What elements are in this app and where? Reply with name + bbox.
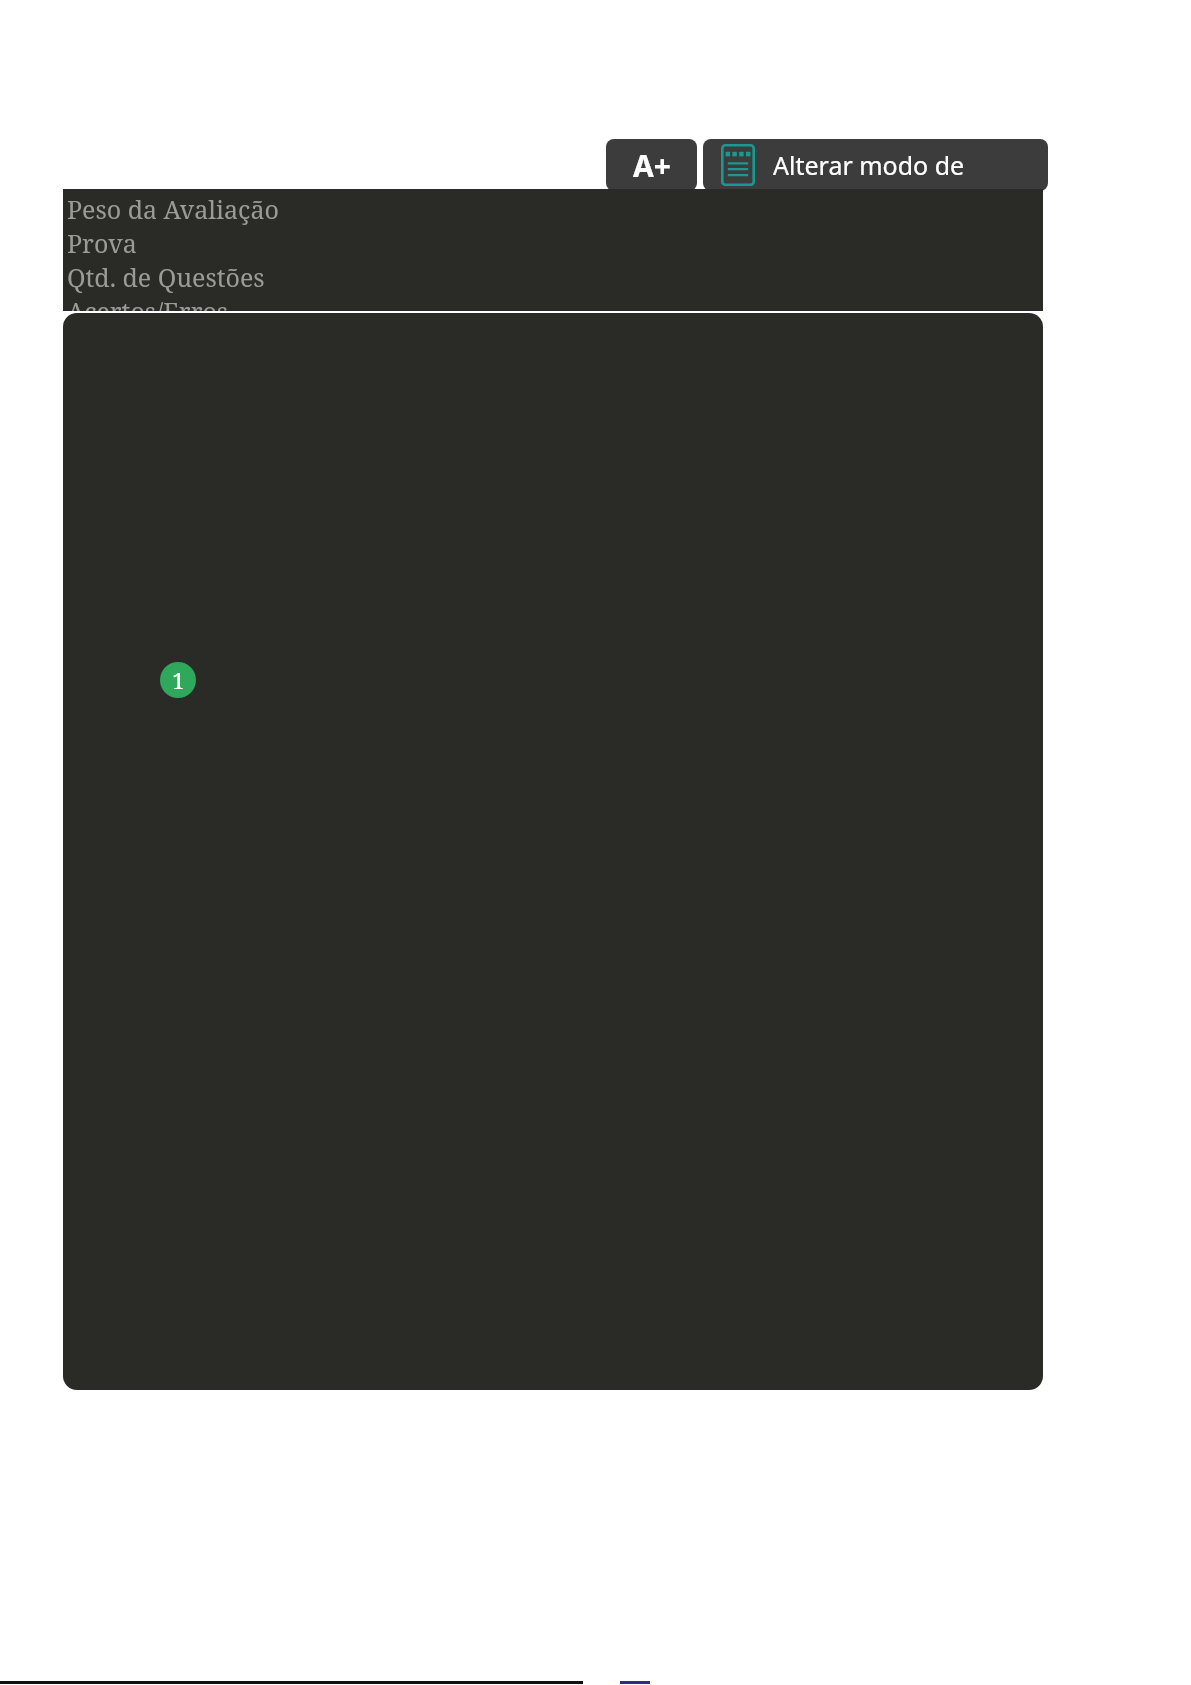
staticText: Prova [67, 226, 137, 260]
staticText: Acertos/Erros [67, 294, 229, 311]
staticText: 1 [172, 665, 185, 695]
button[interactable]: Alterar modo de visualização [703, 139, 1048, 191]
staticText: A+ [633, 145, 671, 186]
staticText: Alterar modo de visualização [773, 148, 1030, 182]
staticText: Qtd. de Questões [67, 260, 265, 294]
staticText: Peso da Avaliação [67, 192, 279, 226]
button[interactable]: 1 [160, 662, 196, 698]
button[interactable]: A+ [606, 139, 697, 191]
button[interactable]: 1 [63, 313, 1043, 1390]
